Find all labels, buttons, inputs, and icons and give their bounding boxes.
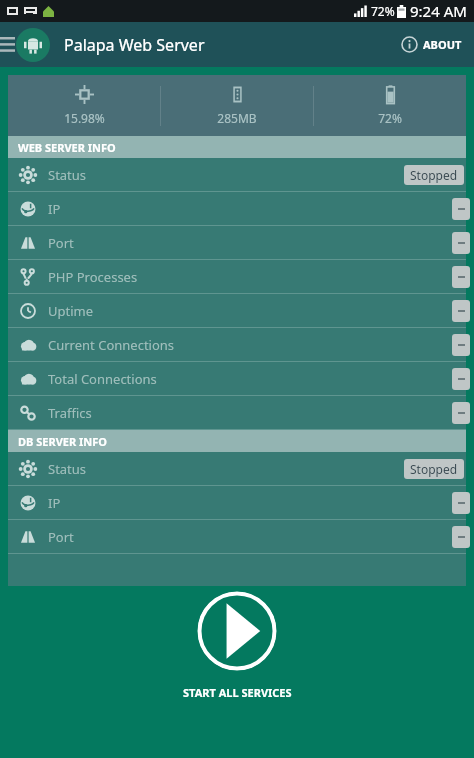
staticText: DB SERVER INFO xyxy=(18,434,108,449)
button[interactable]: Menu xyxy=(0,30,22,60)
staticText: 72% xyxy=(371,3,395,19)
staticText: IP xyxy=(48,494,61,512)
staticText: Status xyxy=(48,460,87,478)
staticText: Status xyxy=(48,166,87,184)
staticText: Port xyxy=(48,528,74,546)
button[interactable]: Status xyxy=(8,452,466,486)
staticText: IP xyxy=(48,200,61,218)
staticText: START ALL SERVICES xyxy=(183,685,292,700)
staticText: ABOUT xyxy=(423,37,462,52)
button[interactable]: Uptime xyxy=(8,294,466,328)
button[interactable]: IP xyxy=(8,192,466,226)
staticText: WEB SERVER INFO xyxy=(18,140,116,155)
staticText: Stopped xyxy=(410,167,458,183)
staticText: PHP Processes xyxy=(48,268,138,286)
staticText: 15.98% xyxy=(64,110,105,126)
staticText: Current Connections xyxy=(48,336,175,354)
button[interactable]: ABOUT xyxy=(399,32,464,57)
staticText: Stopped xyxy=(410,461,458,477)
staticText: Port xyxy=(48,234,74,252)
button[interactable]: Current Connections xyxy=(8,328,466,362)
button[interactable]: Total Connections xyxy=(8,362,466,396)
button[interactable]: Start all services xyxy=(197,591,277,671)
button[interactable]: PHP Processes xyxy=(8,260,466,294)
button[interactable]: 15.98% xyxy=(8,85,160,126)
button[interactable]: 285MB xyxy=(161,85,313,126)
button[interactable]: Traffics xyxy=(8,396,466,430)
staticText: Traffics xyxy=(48,404,92,422)
staticText: 285MB xyxy=(217,110,257,126)
staticText: Palapa Web Server xyxy=(64,34,205,56)
button[interactable]: Port xyxy=(8,520,466,554)
button[interactable]: IP xyxy=(8,486,466,520)
staticText: Total Connections xyxy=(48,370,157,388)
button[interactable]: Port xyxy=(8,226,466,260)
button[interactable]: Status xyxy=(8,158,466,192)
staticText: 9:24 AM xyxy=(410,1,467,21)
staticText: 72% xyxy=(378,110,402,126)
button[interactable]: 72% xyxy=(314,85,466,126)
staticText: Uptime xyxy=(48,302,94,320)
